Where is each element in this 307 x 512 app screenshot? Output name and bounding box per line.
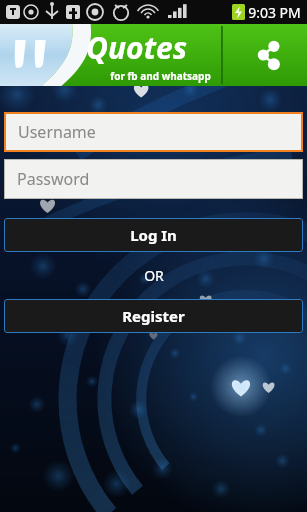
- staticText: Password: [17, 168, 90, 190]
- staticText: 9:03 PM: [248, 3, 301, 22]
- staticText: Quotes: [86, 27, 187, 68]
- staticText: OR: [144, 266, 164, 285]
- button[interactable]: Username: [6, 114, 301, 150]
- staticText: Username: [18, 121, 96, 143]
- button[interactable]: Log In: [4, 218, 303, 252]
- button[interactable]: Share: [223, 24, 307, 86]
- button[interactable]: Register: [4, 299, 303, 333]
- button[interactable]: Password: [5, 160, 302, 198]
- staticText: Log In: [130, 225, 177, 245]
- staticText: Register: [122, 306, 185, 326]
- staticText: for fb and whatsapp: [110, 69, 211, 83]
